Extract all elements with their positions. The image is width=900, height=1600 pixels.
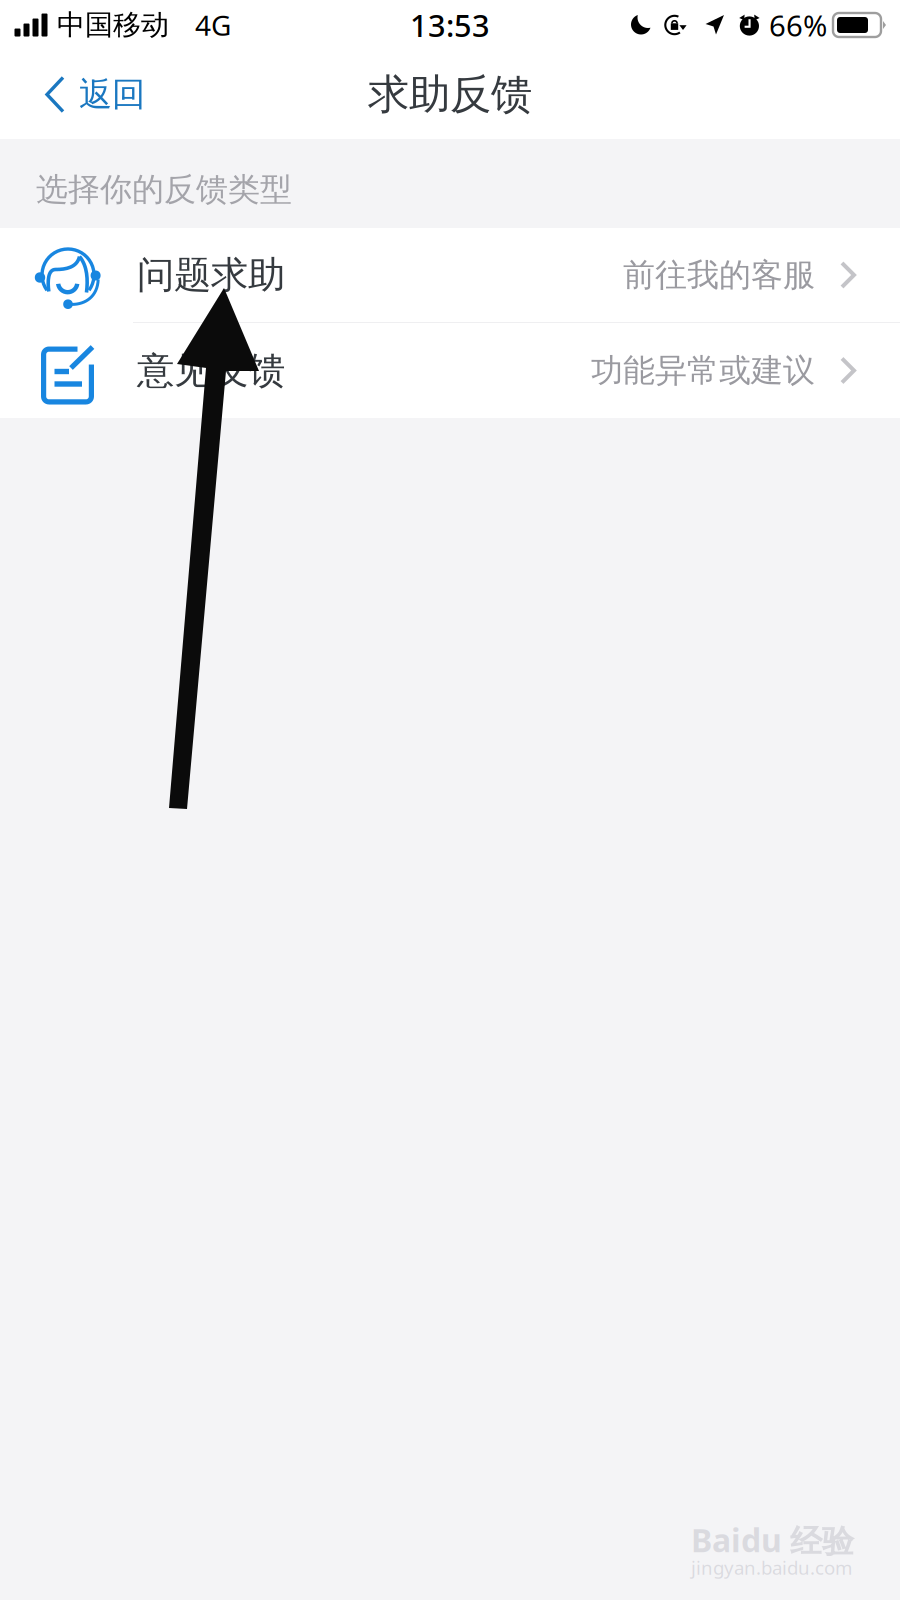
button[interactable]: 意见反馈 <box>0 323 900 418</box>
staticText: 4G <box>195 6 231 44</box>
staticText: Baidu 经验 <box>691 1518 854 1561</box>
button[interactable]: 返回 <box>0 50 169 139</box>
staticText: 13:53 <box>410 5 490 45</box>
staticText: 返回 <box>79 74 145 115</box>
staticText: 选择你的反馈类型 <box>36 170 292 209</box>
staticText: 求助反馈 <box>368 69 532 120</box>
staticText: 问题求助 <box>137 252 285 298</box>
staticText: 66% <box>769 5 827 44</box>
button[interactable]: 问题求助 <box>0 228 900 322</box>
staticText: jingyan.baidu.com <box>691 1555 852 1580</box>
staticText: 意见反馈 <box>137 348 285 393</box>
staticText: 中国移动 <box>57 8 169 42</box>
staticText: 前往我的客服 <box>623 255 815 295</box>
staticText: 功能异常或建议 <box>591 351 815 390</box>
